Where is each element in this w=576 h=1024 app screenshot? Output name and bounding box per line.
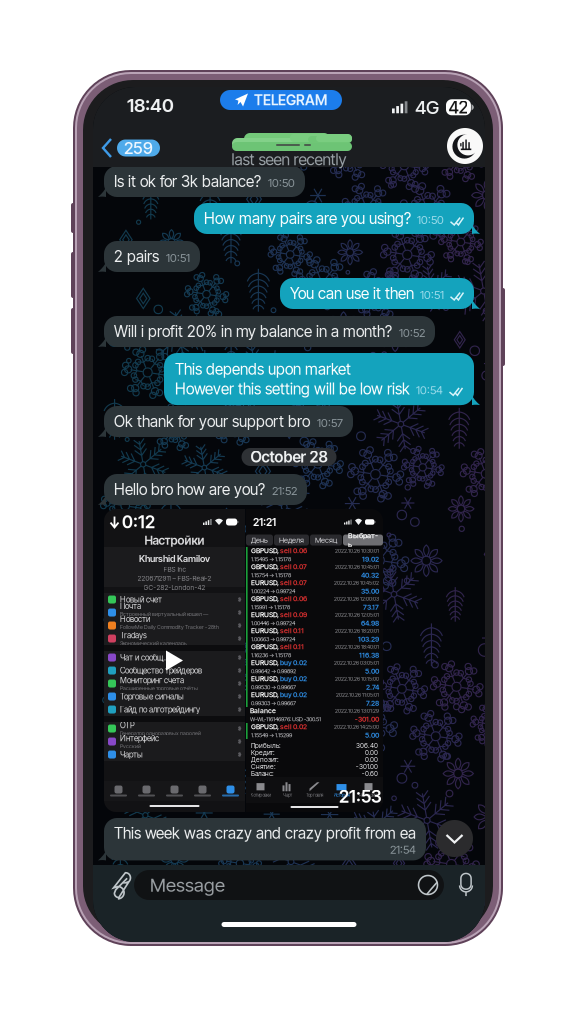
button[interactable]: Scroll to bottom bbox=[436, 820, 473, 857]
staticText: W-WL-116146976: USD -300.51 bbox=[250, 716, 321, 723]
staticText: FBS Inc bbox=[163, 565, 185, 573]
staticText: -0.60 bbox=[362, 769, 378, 778]
staticText: sell 0.07 bbox=[280, 579, 307, 587]
button[interactable]: 259 bbox=[102, 131, 166, 165]
staticText: 259 bbox=[124, 138, 153, 158]
staticText: Сообщество трейдеров bbox=[120, 666, 202, 675]
staticText: День bbox=[251, 535, 268, 544]
staticText: 10:52 bbox=[399, 326, 425, 340]
staticText: 1.00446 → 0.99724 bbox=[251, 620, 295, 627]
staticText: 1.16236 → 1.15178 bbox=[251, 652, 291, 659]
staticText: EURUSD, bbox=[251, 611, 280, 619]
staticText: 2022.10.26 10:45:02 bbox=[334, 580, 379, 586]
staticText: 0.00 bbox=[365, 755, 378, 764]
staticText: 10:57 bbox=[317, 416, 343, 430]
staticText: 1.00224 → 0.99724 bbox=[251, 588, 295, 595]
staticText: 1.15495 → 1.15178 bbox=[251, 556, 291, 563]
button[interactable]: Stickers bbox=[412, 869, 444, 901]
staticText: GC-282-London-42 bbox=[143, 583, 205, 591]
staticText: 73.17 bbox=[363, 603, 379, 611]
staticText: sell 0.07 bbox=[280, 563, 307, 571]
staticText: TELEGRAM bbox=[254, 91, 327, 108]
staticText: Новости bbox=[120, 614, 150, 624]
staticText: 2 pairs bbox=[114, 247, 159, 266]
staticText: sell 0.09 bbox=[280, 611, 307, 619]
staticText: Интерфейс bbox=[120, 733, 159, 743]
staticText: 2022.10.26 18:20:01 bbox=[335, 628, 379, 634]
staticText: sell 0.06 bbox=[280, 595, 307, 603]
staticText: 42 bbox=[448, 97, 468, 118]
staticText: 2022.10.26 11:05:01 bbox=[336, 692, 379, 698]
staticText: 306.40 bbox=[356, 741, 378, 750]
staticText: Balance bbox=[250, 707, 276, 715]
staticText: 1.15754 → 1.15178 bbox=[251, 572, 291, 579]
staticText: 2.74 bbox=[366, 683, 379, 691]
staticText: Khurshid Kamilov bbox=[139, 553, 210, 564]
staticText: 2022.10.26 12:05:01 bbox=[335, 612, 379, 618]
staticText: 0.99530 → 0.99667 bbox=[251, 684, 296, 691]
button[interactable]: Message bbox=[134, 870, 444, 900]
staticText: 2022.10.26 10:30:01 bbox=[335, 548, 379, 554]
staticText: This week was crazy and crazy profit fro… bbox=[114, 824, 416, 843]
staticText: 10:51 bbox=[166, 251, 190, 265]
staticText: 2022.10.26 10:45:01 bbox=[335, 564, 379, 570]
staticText: Почта bbox=[120, 601, 141, 611]
staticText: sell 0.11 bbox=[280, 627, 304, 635]
staticText: Гайд по алготрейдингу bbox=[120, 705, 200, 714]
staticText: Расширенные торговые отчёты bbox=[120, 685, 198, 692]
staticText: Торговые сигналы bbox=[120, 692, 184, 701]
staticText: 0.99642 → 0.99892 bbox=[251, 668, 296, 675]
staticText: Tradays bbox=[120, 630, 147, 640]
staticText: Генератор одноразовых паролей bbox=[120, 730, 201, 737]
staticText: 18:40 bbox=[127, 94, 174, 117]
staticText: Прибыль: bbox=[251, 741, 281, 750]
staticText: Will i profit 20% in my balance in a mon… bbox=[114, 322, 392, 341]
staticText: How many pairs are you using? bbox=[204, 209, 411, 228]
staticText: 21:21 bbox=[253, 515, 276, 528]
button[interactable]: Profile bbox=[447, 128, 483, 164]
staticText: GBPUSD, bbox=[251, 643, 280, 651]
staticText: sell 0.11 bbox=[280, 643, 304, 651]
staticText: Настройки bbox=[144, 533, 204, 547]
staticText: 10:50 bbox=[268, 176, 295, 190]
staticText: Котировки bbox=[250, 792, 270, 798]
staticText: -301.00 bbox=[356, 762, 378, 771]
staticText: 4G bbox=[415, 96, 439, 119]
staticText: Торговля bbox=[306, 792, 323, 798]
staticText: 0:12 bbox=[122, 511, 155, 532]
staticText: 1.15991 → 1.15178 bbox=[251, 604, 290, 611]
staticText: 10:54 bbox=[416, 383, 443, 397]
staticText: EURUSD, bbox=[251, 691, 280, 699]
staticText: 5.00 bbox=[365, 667, 379, 675]
staticText: Чарты bbox=[120, 750, 143, 759]
staticText: Hello bro how are you? bbox=[114, 480, 265, 499]
staticText: 5.00 bbox=[365, 731, 379, 739]
staticText: Депозит: bbox=[251, 755, 279, 764]
staticText: 64.98 bbox=[361, 619, 379, 627]
button[interactable]: Attach bbox=[101, 865, 141, 905]
staticText: Экономический календарь bbox=[120, 640, 187, 647]
staticText: Ok thank for your support bro bbox=[114, 412, 310, 431]
staticText: However this setting will be low risk bbox=[175, 380, 410, 398]
staticText: Новый счет bbox=[120, 595, 162, 604]
staticText: Message bbox=[150, 874, 225, 896]
staticText: Настройки bbox=[358, 792, 378, 798]
staticText: 21:54 bbox=[390, 843, 416, 856]
staticText: EURUSD, bbox=[251, 627, 280, 635]
staticText: -301.00 bbox=[355, 715, 379, 723]
staticText: Снятие: bbox=[251, 762, 276, 771]
staticText: 116.38 bbox=[359, 651, 379, 659]
staticText: GBPUSD, bbox=[251, 547, 280, 555]
staticText: OTP bbox=[120, 720, 135, 730]
staticText: Месяц bbox=[315, 535, 337, 544]
staticText: Выбрать bbox=[348, 531, 378, 549]
staticText: Чарт bbox=[283, 792, 292, 798]
staticText: История bbox=[333, 792, 349, 798]
staticText: buy 0.02 bbox=[280, 659, 307, 667]
button[interactable]: Record voice message bbox=[449, 868, 483, 902]
staticText: 1.15549 → 1.15299 bbox=[251, 732, 292, 739]
staticText: 2022.10.26 12:00:03 bbox=[334, 596, 379, 602]
staticText: sell 0.06 bbox=[280, 547, 307, 555]
staticText: Мониторинг счета bbox=[120, 675, 184, 685]
staticText: 40.32 bbox=[361, 571, 379, 579]
